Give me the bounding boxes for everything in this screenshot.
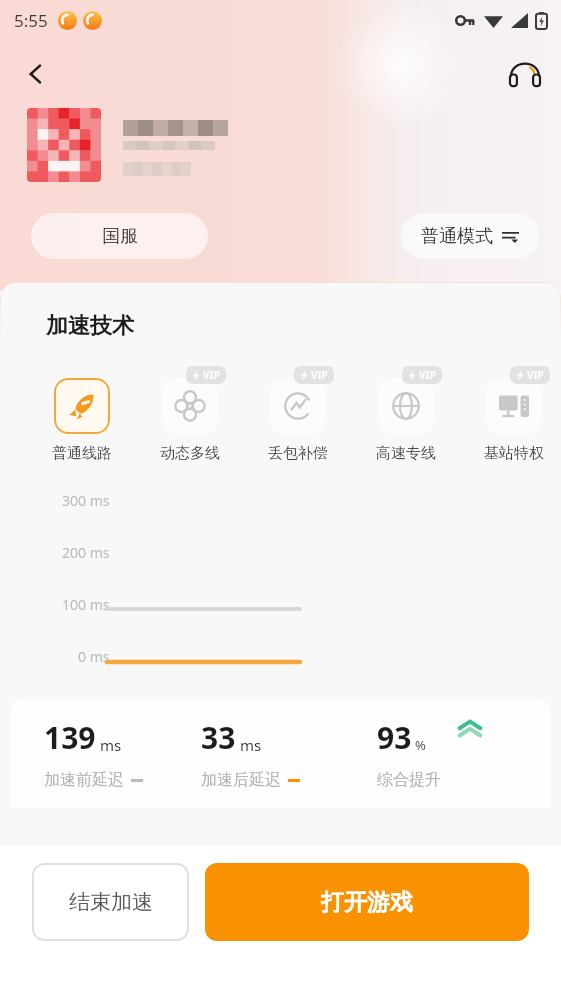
staticText: 结束加速	[69, 889, 153, 915]
staticText: 93	[377, 717, 412, 758]
button[interactable]: Back	[14, 52, 58, 96]
staticText: VIP	[203, 368, 220, 382]
staticText: 200 ms	[62, 543, 110, 562]
staticText: 丢包补偿	[268, 444, 328, 463]
button[interactable]: VIP	[368, 366, 444, 463]
staticText: VIP	[419, 368, 436, 382]
staticText: 综合提升	[377, 770, 441, 790]
staticText: 33	[201, 717, 236, 758]
staticText: 动态多线	[160, 444, 220, 463]
button[interactable]: 普通模式	[401, 213, 539, 259]
staticText: 100 ms	[62, 595, 110, 614]
staticText: 加速后延迟	[201, 770, 281, 790]
button[interactable]: Support	[503, 52, 547, 96]
button[interactable]: 普通线路	[44, 366, 120, 463]
button[interactable]: 国服	[31, 213, 208, 259]
staticText: 300 ms	[62, 491, 110, 510]
staticText: %	[415, 736, 426, 754]
staticText: ms	[100, 735, 122, 755]
staticText: 基站特权	[484, 444, 544, 463]
staticText: 普通模式	[421, 225, 493, 248]
staticText: VIP	[311, 368, 328, 382]
staticText: 高速专线	[376, 444, 436, 463]
staticText: 加速前延迟	[44, 770, 124, 790]
staticText: 139	[44, 717, 96, 758]
button[interactable]: VIP	[152, 366, 228, 463]
staticText: 加速技术	[46, 312, 134, 340]
staticText: 0 ms	[78, 647, 110, 666]
button[interactable]: 结束加速	[32, 863, 189, 941]
staticText: ms	[240, 735, 262, 755]
button[interactable]: 打开游戏	[205, 863, 529, 941]
staticText: 5:55	[14, 9, 48, 32]
staticText: VIP	[527, 368, 544, 382]
button[interactable]: VIP	[476, 366, 552, 463]
staticText: 打开游戏	[321, 888, 413, 917]
staticText: 国服	[102, 225, 138, 248]
button[interactable]: VIP	[260, 366, 336, 463]
staticText: 普通线路	[52, 444, 112, 463]
